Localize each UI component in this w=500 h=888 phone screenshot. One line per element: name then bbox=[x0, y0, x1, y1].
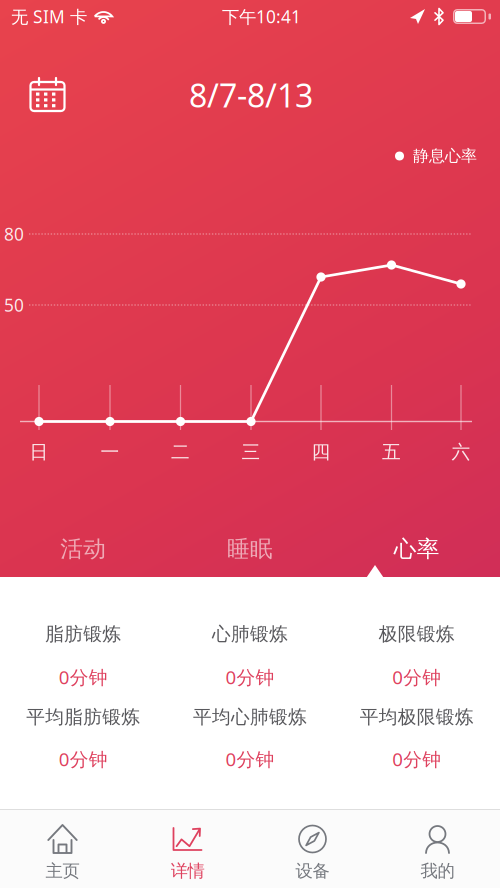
staticText: 静息心率 bbox=[413, 146, 477, 166]
staticText: 主页 bbox=[45, 860, 79, 882]
staticText: 平均脂肪锻炼 bbox=[26, 705, 140, 728]
staticText: 心肺锻炼 bbox=[212, 622, 288, 645]
button[interactable]: 活动 bbox=[0, 521, 167, 577]
staticText: 一 bbox=[100, 440, 119, 463]
staticText: 平均极限锻炼 bbox=[360, 705, 474, 728]
staticText: 0分钟 bbox=[225, 665, 274, 689]
button[interactable]: 详情 bbox=[125, 809, 250, 888]
staticText: 无 SIM 卡 bbox=[11, 5, 87, 28]
staticText: 日 bbox=[29, 440, 48, 463]
button[interactable]: Choose week bbox=[20, 68, 74, 122]
staticText: 详情 bbox=[170, 860, 204, 882]
staticText: 脂肪锻炼 bbox=[45, 622, 121, 645]
staticText: 极限锻炼 bbox=[379, 622, 455, 645]
staticText: 0分钟 bbox=[392, 747, 441, 771]
staticText: 平均心肺锻炼 bbox=[193, 705, 307, 728]
staticText: 50 bbox=[4, 293, 24, 316]
button[interactable]: 我的 bbox=[375, 809, 500, 888]
staticText: 下午10:41 bbox=[222, 5, 301, 28]
staticText: 睡眠 bbox=[227, 535, 273, 563]
button[interactable]: 主页 bbox=[0, 809, 125, 888]
staticText: 设备 bbox=[295, 860, 329, 882]
staticText: 0分钟 bbox=[392, 665, 441, 689]
staticText: 8/7-8/13 bbox=[189, 74, 313, 116]
staticText: 五 bbox=[382, 440, 401, 463]
button[interactable]: 心率 bbox=[333, 521, 500, 577]
staticText: 三 bbox=[241, 440, 260, 463]
staticText: 二 bbox=[171, 440, 190, 463]
staticText: 心率 bbox=[394, 535, 440, 563]
staticText: 活动 bbox=[60, 535, 106, 563]
staticText: 80 bbox=[4, 222, 24, 245]
button[interactable]: 睡眠 bbox=[167, 521, 333, 577]
staticText: 四 bbox=[311, 440, 330, 463]
staticText: 0分钟 bbox=[225, 747, 274, 771]
staticText: 我的 bbox=[420, 860, 454, 882]
staticText: 0分钟 bbox=[59, 747, 108, 771]
staticText: 六 bbox=[451, 440, 470, 463]
staticText: 0分钟 bbox=[59, 665, 108, 689]
button[interactable]: 设备 bbox=[250, 809, 375, 888]
